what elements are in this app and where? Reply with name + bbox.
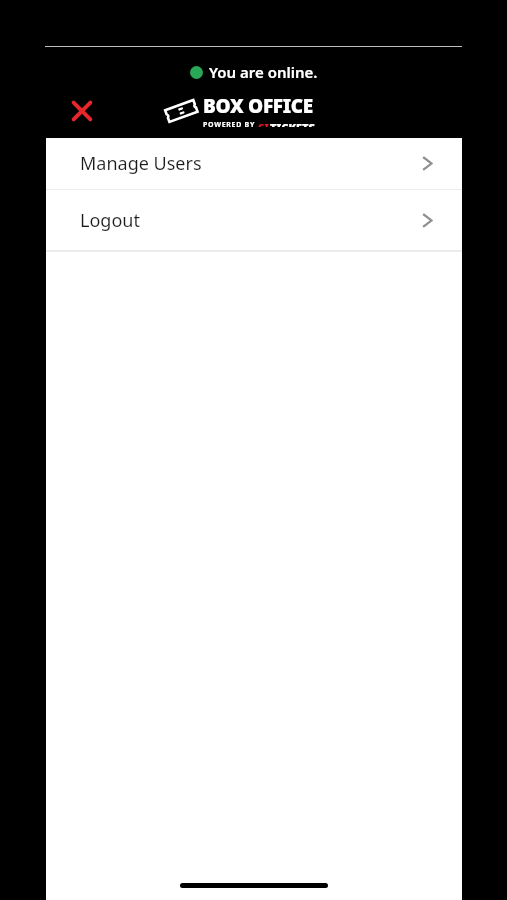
button[interactable]: Close	[60, 89, 103, 132]
staticText: BOX OFFICE	[203, 93, 313, 119]
staticText: TICKETS	[270, 120, 315, 127]
button[interactable]: Logout	[46, 190, 462, 250]
staticText: Logout	[80, 208, 140, 233]
staticText: Manage Users	[80, 151, 202, 176]
staticText: You are online.	[209, 62, 318, 82]
button[interactable]: Manage Users	[46, 138, 462, 189]
staticText: POWERED BY	[203, 120, 258, 127]
staticText: SI	[258, 120, 270, 127]
